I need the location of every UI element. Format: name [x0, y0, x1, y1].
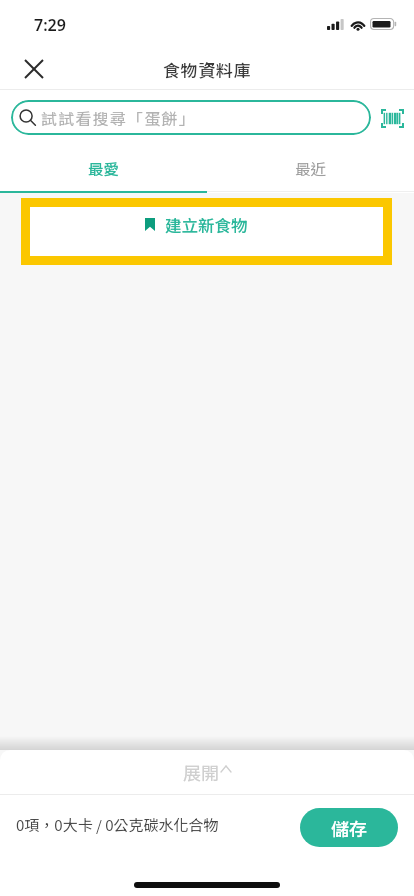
button[interactable]: 建立新食物 — [30, 207, 383, 256]
button[interactable]: 最近 — [207, 145, 414, 191]
button[interactable]: Close — [12, 47, 56, 91]
staticText: 最愛 — [88, 157, 120, 179]
staticText: 試試看搜尋「蛋餅」 — [41, 106, 196, 129]
button[interactable]: 儲存 — [300, 808, 398, 847]
button[interactable]: 展開 — [0, 750, 414, 794]
button[interactable]: 最愛 — [0, 145, 207, 191]
staticText: 最近 — [295, 157, 327, 179]
staticText: 展開 — [183, 759, 219, 785]
staticText: 儲存 — [331, 815, 367, 841]
staticText: 0項，0大卡 / 0公克碳水化合物 — [16, 814, 219, 836]
staticText: 食物資料庫 — [163, 57, 251, 82]
button[interactable]: 試試看搜尋「蛋餅」 — [11, 100, 371, 135]
button[interactable]: Scan barcode — [378, 104, 406, 132]
staticText: 7:29 — [34, 14, 66, 36]
staticText: 建立新食物 — [165, 213, 248, 237]
